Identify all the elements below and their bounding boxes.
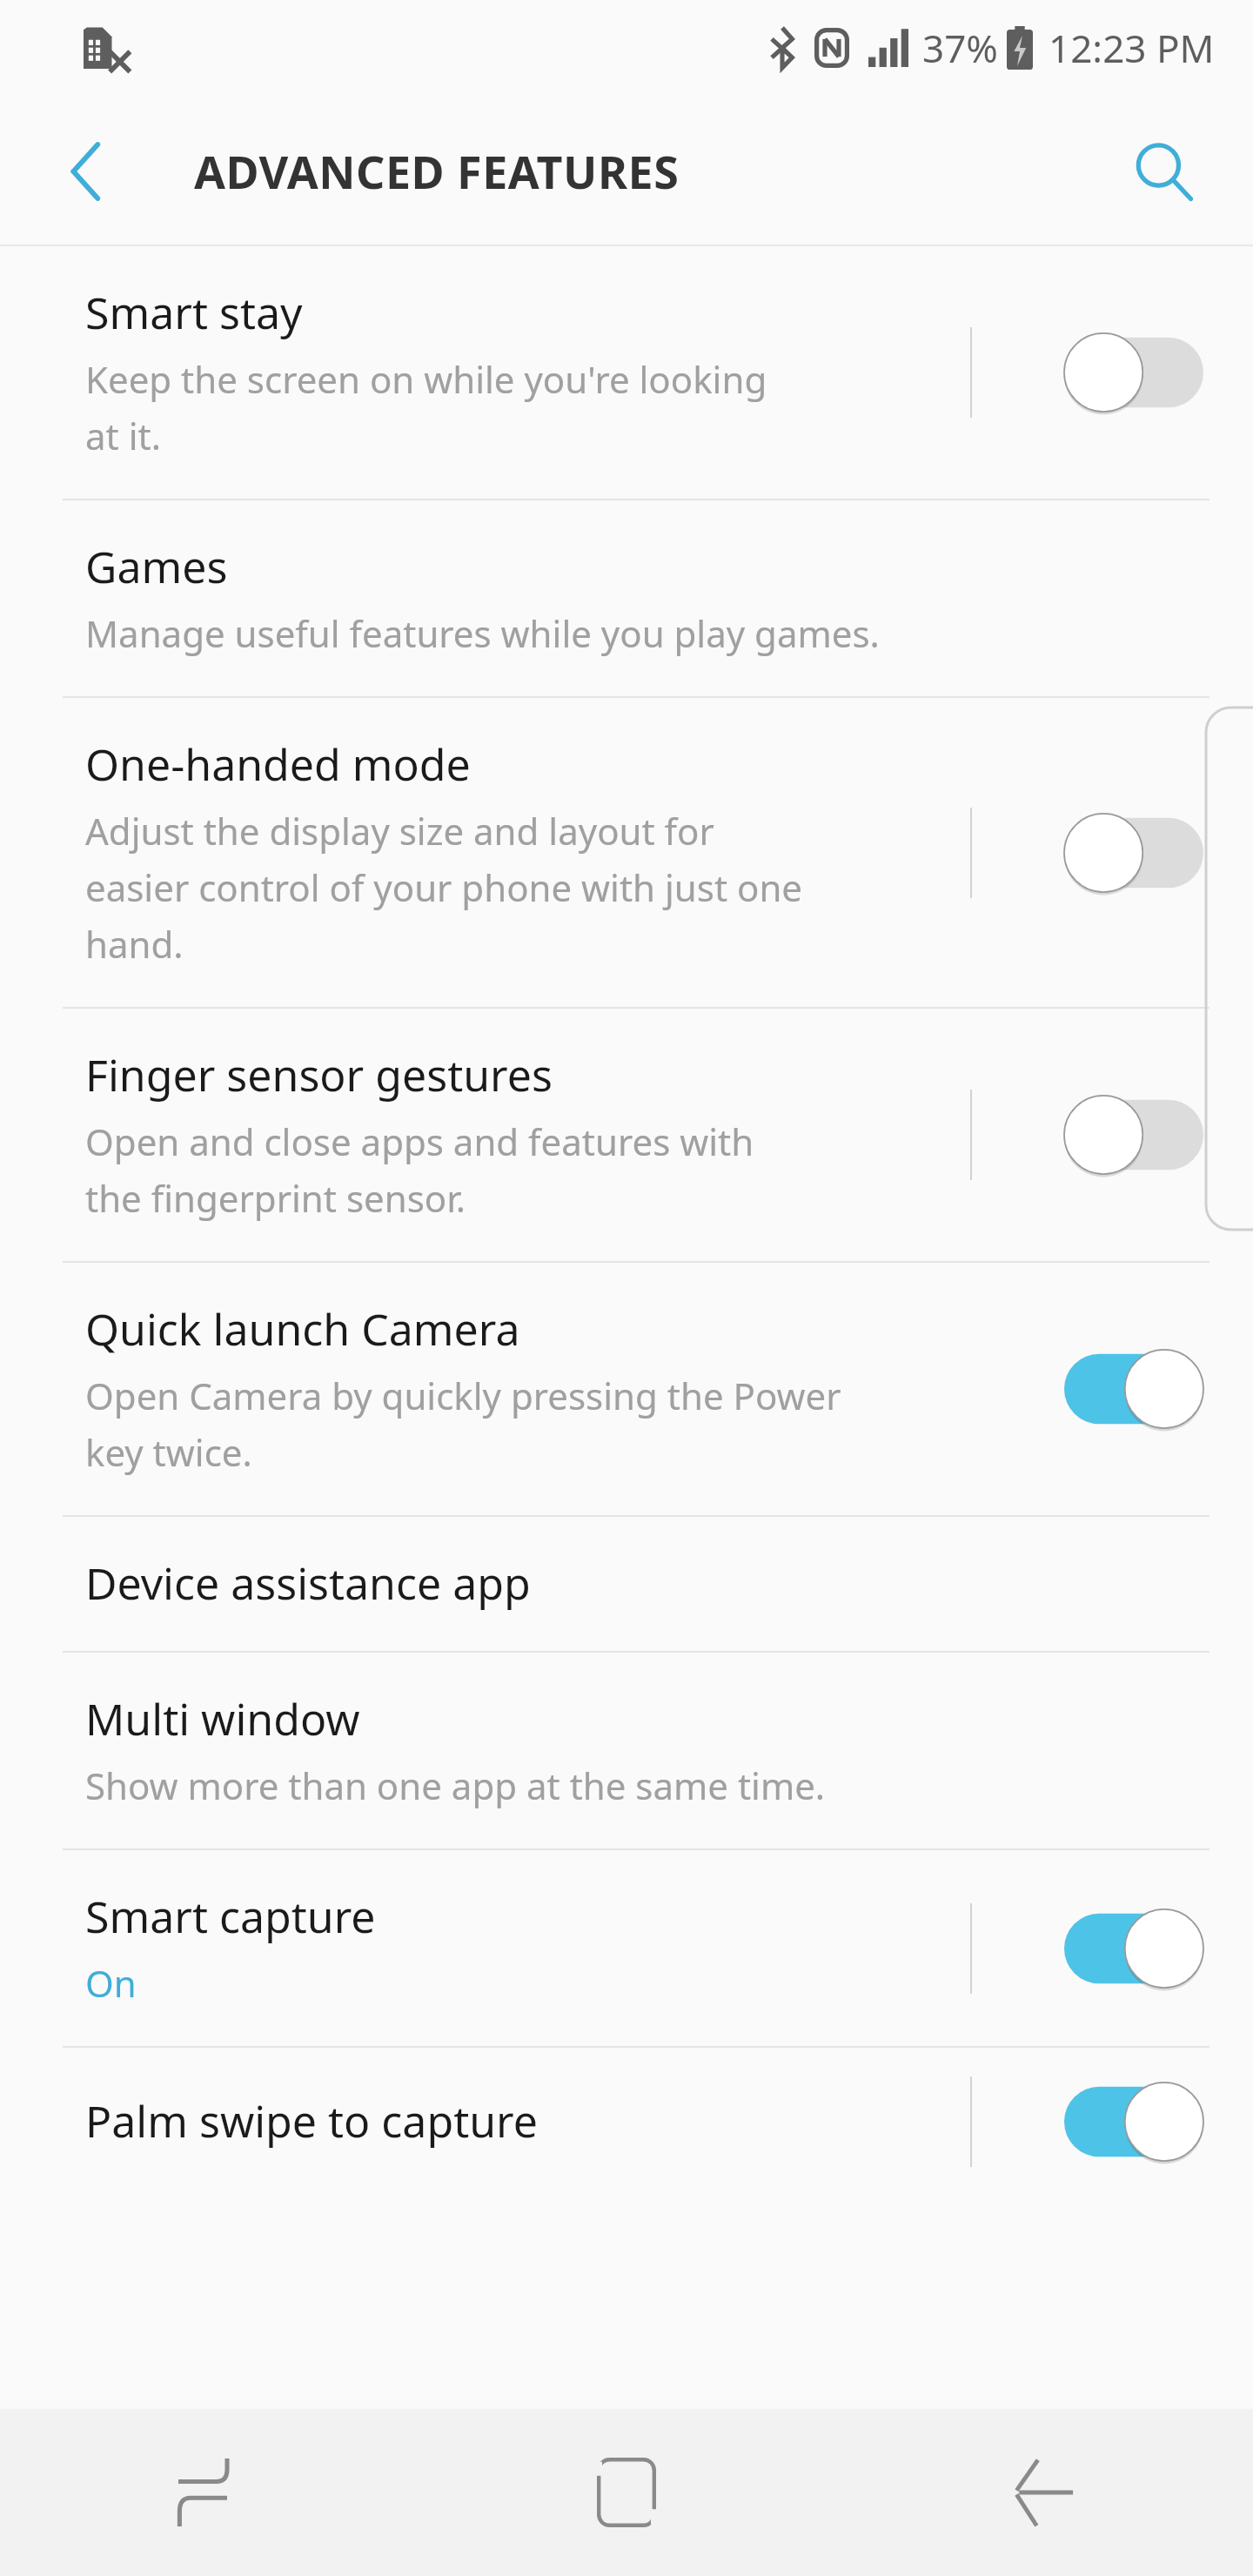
button[interactable]: Palm swipe to capture on <box>1051 2074 1216 2170</box>
staticText: hand. <box>85 919 184 969</box>
staticText: Show more than one app at the same time. <box>85 1761 826 1810</box>
button[interactable]: Home <box>418 2409 835 2576</box>
staticText: Keep the screen on while you're looking <box>85 354 767 404</box>
staticText: Games <box>85 537 228 596</box>
staticText: the fingerprint sensor. <box>85 1173 466 1223</box>
button[interactable]: Back <box>44 130 127 213</box>
button[interactable]: Multi window <box>0 1653 1253 1848</box>
button[interactable]: One-handed mode off <box>1051 805 1216 901</box>
button[interactable]: One-handed mode <box>0 698 1253 1007</box>
staticText: Manage useful features while you play ga… <box>85 608 880 658</box>
staticText: Multi window <box>85 1689 360 1748</box>
staticText: 12:23 PM <box>1049 22 1215 74</box>
button[interactable]: Search <box>1116 124 1211 219</box>
staticText: Adjust the display size and layout for <box>85 806 714 855</box>
staticText: easier control of your phone with just o… <box>85 862 803 912</box>
staticText: Open Camera by quickly pressing the Powe… <box>85 1371 841 1420</box>
staticText: Device assistance app <box>85 1553 531 1613</box>
button[interactable]: Smart capture <box>0 1850 1253 2046</box>
staticText: key twice. <box>85 1427 252 1477</box>
button[interactable]: Smart stay off <box>1051 325 1216 420</box>
staticText: Palm swipe to capture <box>85 2091 538 2150</box>
staticText: 37% <box>922 22 998 74</box>
button[interactable]: Back <box>835 2409 1253 2576</box>
staticText: Smart stay <box>85 283 303 342</box>
staticText: at it. <box>85 411 161 460</box>
staticText: ADVANCED FEATURES <box>194 140 680 202</box>
staticText: Smart capture <box>85 1887 376 1946</box>
staticText: Finger sensor gestures <box>85 1045 553 1104</box>
staticText: One-handed mode <box>85 735 471 794</box>
staticText: Open and close apps and features with <box>85 1117 754 1166</box>
button[interactable]: Palm swipe to capture <box>0 2048 1253 2196</box>
button[interactable]: Quick launch Camera <box>0 1263 1253 1515</box>
button[interactable]: Quick launch Camera on <box>1051 1341 1216 1437</box>
staticText: Quick launch Camera <box>85 1299 520 1358</box>
button[interactable]: Recents <box>0 2409 418 2576</box>
button[interactable]: Finger sensor gestures off <box>1051 1087 1216 1183</box>
button[interactable]: Smart capture on <box>1051 1901 1216 1996</box>
button[interactable]: Device assistance app <box>0 1517 1253 1651</box>
button[interactable]: Smart stay <box>0 246 1253 499</box>
button[interactable]: Games <box>0 500 1253 696</box>
staticText: On <box>85 1958 137 2008</box>
button[interactable]: Finger sensor gestures <box>0 1009 1253 1261</box>
